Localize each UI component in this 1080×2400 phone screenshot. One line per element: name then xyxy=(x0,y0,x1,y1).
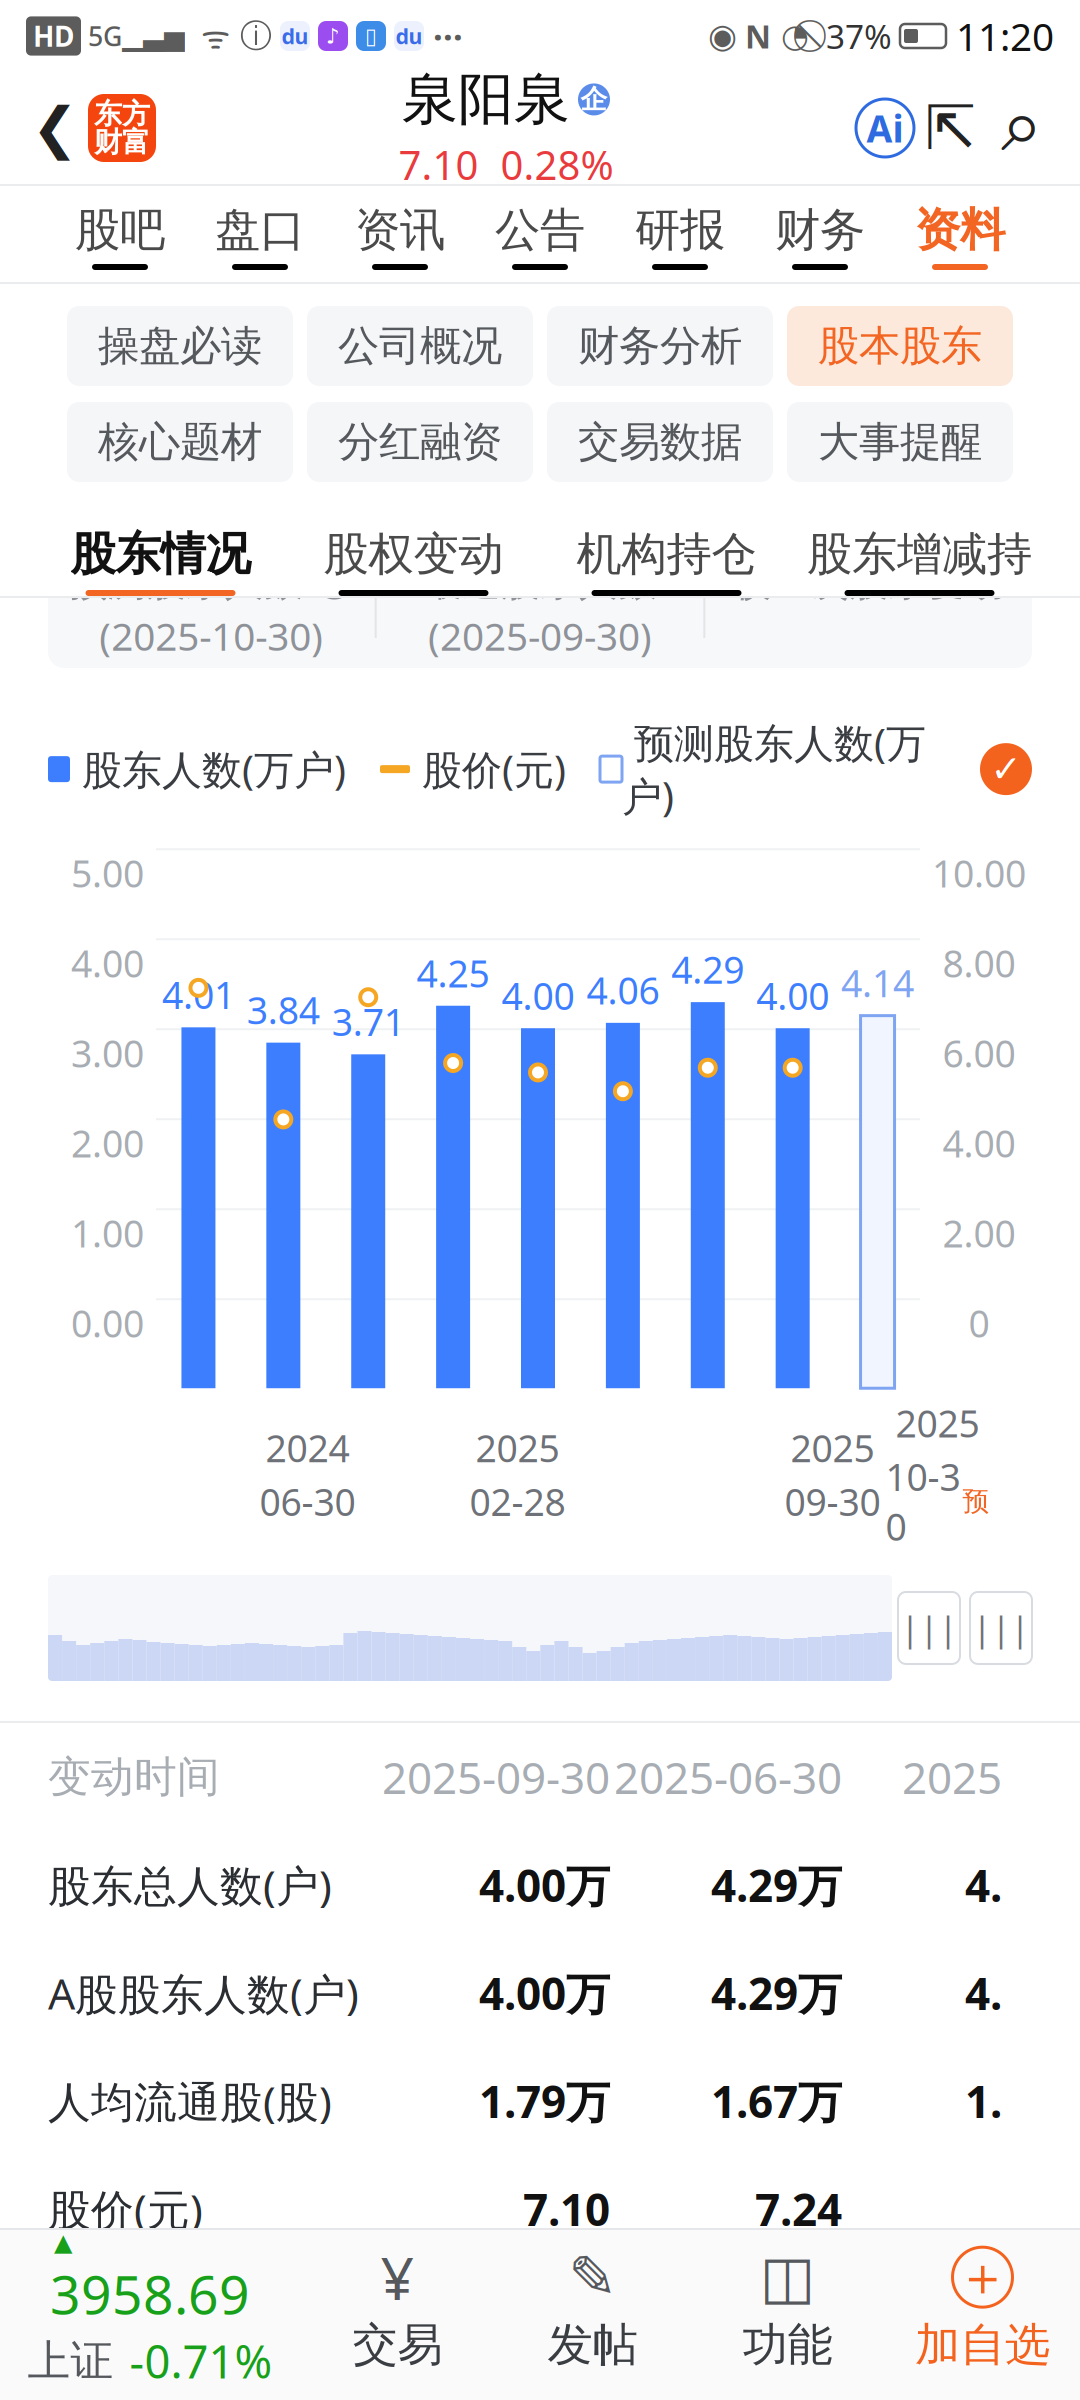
staticText: 37% xyxy=(817,14,892,58)
staticText: 12.07万 xyxy=(686,2288,842,2346)
staticText: 最近股东人数 xyxy=(423,559,657,606)
button[interactable]: 股本股东 xyxy=(787,306,1013,386)
staticText: 4. xyxy=(965,1964,1002,2022)
staticText: 7.10 xyxy=(523,2180,610,2238)
staticText: ᯤ xyxy=(185,15,230,57)
staticText: 核心题材 xyxy=(98,417,262,467)
staticText: ❮ xyxy=(31,96,78,160)
staticText: 11:20 xyxy=(946,10,1054,62)
button[interactable]: 股权变动 xyxy=(287,500,540,596)
button[interactable]: 公司概况 xyxy=(307,306,533,386)
staticText: 操盘必读 xyxy=(98,321,262,371)
staticText: 泉阳泉 xyxy=(402,65,570,134)
staticText: 4.00 xyxy=(501,971,574,1020)
button[interactable]: 分红融资 xyxy=(307,402,533,482)
staticText: 06-30 xyxy=(259,1477,355,1526)
button[interactable]: ✎ xyxy=(495,2247,690,2373)
staticText: 预测股东人数 ⓘ xyxy=(69,559,354,606)
staticText: -0.71% xyxy=(129,2331,272,2391)
button[interactable]: 盘口 xyxy=(190,186,330,282)
staticText: 4.29万 xyxy=(711,1856,842,1914)
staticText: 4.00 xyxy=(756,971,829,1020)
staticText: 3.84 xyxy=(247,985,320,1035)
staticText: 股本股东 xyxy=(818,321,982,371)
staticText: 公司概况 xyxy=(338,321,502,371)
staticText: du xyxy=(395,22,422,50)
button[interactable]: ¥ xyxy=(300,2247,495,2373)
button[interactable]: 机构持仓 xyxy=(540,500,793,596)
staticText: ♪ xyxy=(326,24,340,48)
staticText: 较上次股东变动 xyxy=(732,559,1005,606)
button[interactable]: 财务 xyxy=(750,186,890,282)
staticText: 4.29万 xyxy=(711,1964,842,2022)
staticText: 0.28% xyxy=(500,138,613,191)
staticText: Ai xyxy=(866,103,903,153)
button[interactable]: 资料 xyxy=(890,186,1030,282)
staticText: 4.00万 xyxy=(479,1856,610,1914)
button[interactable]: 搜索 xyxy=(986,92,1058,164)
staticText: 3958.69 xyxy=(50,2258,250,2329)
button[interactable]: 东方财富首页 xyxy=(88,94,156,162)
button[interactable]: 确认 xyxy=(980,743,1032,795)
staticText: 2025 xyxy=(790,1423,874,1473)
staticText: 发帖 xyxy=(547,2317,637,2373)
staticText: ▁▃▅ xyxy=(122,21,185,51)
staticText: 1.00 xyxy=(71,1208,144,1258)
staticText: ◉ xyxy=(708,17,737,55)
button[interactable]: ＋ xyxy=(885,2247,1080,2373)
button[interactable]: 返回 xyxy=(22,83,88,173)
staticText: 财务 xyxy=(775,202,865,258)
staticText: 分红融资 xyxy=(338,417,502,467)
staticText: 3.71 xyxy=(332,997,405,1046)
staticText: 股东情况 xyxy=(70,526,250,582)
staticText: 12. xyxy=(940,2288,1002,2346)
staticText: A股股东人数(户) xyxy=(48,1964,359,2021)
staticText: 机构持仓 xyxy=(576,526,756,582)
staticText: 2024 xyxy=(265,1423,349,1473)
staticText: 上证 xyxy=(27,2335,113,2387)
button[interactable]: 研报 xyxy=(610,186,750,282)
staticText: 7.10 xyxy=(398,138,478,191)
staticText: 人均持股金额(元) xyxy=(48,2289,375,2345)
staticText: 4.25 xyxy=(417,948,490,998)
button[interactable]: 股吧 xyxy=(50,186,190,282)
staticText: 2.00 xyxy=(942,1208,1015,1258)
button[interactable]: 大事提醒 xyxy=(787,402,1013,482)
button[interactable]: 股东情况 xyxy=(34,500,287,596)
staticText: 4.06 xyxy=(586,965,659,1015)
staticText: 4.00万 xyxy=(479,1964,610,2022)
staticText: 7.24 xyxy=(755,2180,842,2238)
button[interactable]: 上证指数 xyxy=(0,2229,300,2391)
staticText: 12.68万 xyxy=(454,2288,610,2346)
staticText: 3.00 xyxy=(71,1028,144,1078)
staticText: HD xyxy=(33,17,74,55)
staticText: 4.29 xyxy=(671,945,744,994)
staticText: 1. xyxy=(965,2072,1002,2130)
button[interactable]: 分享 xyxy=(914,92,986,164)
button[interactable]: 股东增减持 xyxy=(793,500,1046,596)
staticText: 东方 xyxy=(94,97,150,131)
staticText: 1.79万 xyxy=(479,2072,610,2130)
button[interactable]: AI 助手 xyxy=(856,99,914,157)
staticText: ⌕ xyxy=(1001,92,1043,164)
staticText: 02-28 xyxy=(469,1477,565,1526)
staticText: 5.00 xyxy=(71,848,144,898)
staticText: 股价(元) xyxy=(410,743,566,796)
button[interactable]: 资讯 xyxy=(330,186,470,282)
staticText: ▲ xyxy=(54,2229,72,2256)
staticText: (2025-10-30) xyxy=(99,610,323,661)
button[interactable]: ◫ xyxy=(690,2247,885,2373)
button[interactable]: 操盘必读 xyxy=(67,306,293,386)
staticText: 2025-06-30 xyxy=(614,1748,842,1806)
staticText: 预 xyxy=(962,1485,989,1518)
button[interactable]: 公告 xyxy=(470,186,610,282)
staticText: 大事提醒 xyxy=(818,417,982,467)
staticText: ◔ xyxy=(771,18,809,54)
staticText: ||| xyxy=(900,1605,957,1651)
button[interactable]: 交易数据 xyxy=(547,402,773,482)
staticText: 股东人数(万户) xyxy=(70,743,346,796)
button[interactable]: 核心题材 xyxy=(67,402,293,482)
button[interactable]: 财务分析 xyxy=(547,306,773,386)
staticText: (2025-09-30) xyxy=(428,610,652,661)
staticText: 功能 xyxy=(742,2317,832,2373)
